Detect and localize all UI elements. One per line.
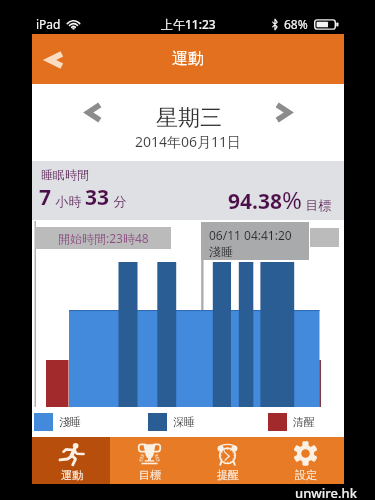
staticText: 目標 — [302, 196, 332, 214]
staticText: 68% — [284, 16, 308, 32]
staticText: 設定 — [295, 468, 317, 482]
staticText: iPad — [36, 16, 61, 32]
staticText: 目標 — [139, 468, 161, 482]
staticText: 33 — [85, 183, 110, 212]
staticText: unwire.hk — [295, 484, 357, 500]
staticText: 開始時間:23時48 — [58, 230, 149, 246]
staticText: 2014年06月11日 — [135, 132, 242, 151]
staticText: 7 — [39, 183, 52, 212]
button[interactable]: 提醒 — [188, 437, 266, 484]
staticText: 94.38 — [228, 187, 282, 216]
button[interactable]: 目標 — [110, 437, 188, 484]
staticText: 星期三 — [156, 104, 222, 132]
button[interactable]: 清醒 — [268, 413, 315, 431]
staticText: 清醒 — [293, 415, 315, 429]
button[interactable]: Next day — [269, 95, 299, 129]
button[interactable]: Previous day — [77, 95, 107, 129]
button[interactable]: 設定 — [266, 437, 344, 484]
button[interactable]: Back — [32, 34, 78, 84]
staticText: 小時 — [52, 192, 85, 210]
staticText: 淺睡 — [59, 415, 81, 429]
button[interactable]: 運動 — [32, 437, 110, 484]
staticText: 淺睡 — [209, 244, 233, 259]
staticText: 運動 — [172, 49, 204, 69]
staticText: 06/11 04:41:20 — [209, 227, 292, 243]
button[interactable]: 淺睡 — [34, 413, 81, 431]
staticText: 分 — [110, 192, 127, 210]
staticText: 深睡 — [173, 415, 195, 429]
staticText: % — [282, 183, 302, 216]
button[interactable]: 深睡 — [148, 413, 195, 431]
staticText: 提醒 — [217, 468, 239, 482]
staticText: 睡眠時間 — [41, 167, 89, 182]
staticText: 運動 — [61, 468, 83, 482]
staticText: 上午11:23 — [161, 16, 216, 32]
